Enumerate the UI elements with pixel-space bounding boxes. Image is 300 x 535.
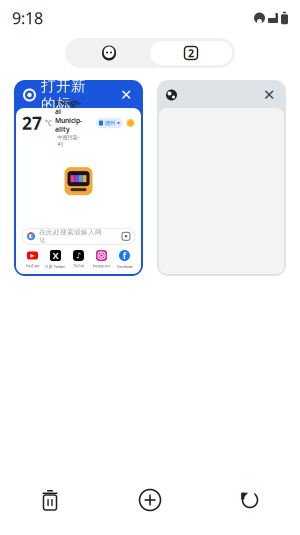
staticText: 27: [22, 111, 42, 134]
button[interactable]: New tab: [122, 478, 178, 522]
staticText: ✕: [120, 87, 132, 103]
button[interactable]: Close tab: [261, 87, 277, 103]
button[interactable]: ✕: [157, 80, 286, 276]
staticText: 中度污染 · 41: [57, 134, 79, 148]
staticText: ▾: [117, 120, 120, 126]
staticText: TikTok: [73, 263, 84, 268]
staticText: ▶: [30, 252, 34, 259]
staticText: 在此处搜索或输入网址: [39, 228, 102, 244]
staticText: °C: [45, 119, 52, 127]
staticText: 德州: [105, 120, 115, 126]
staticText: 2: [188, 46, 194, 60]
staticText: Facebook: [116, 264, 132, 269]
button[interactable]: ▶: [21, 250, 44, 268]
staticText: X 原 Twitter: [45, 264, 65, 269]
staticText: ✕: [263, 87, 275, 103]
staticText: ♪: [76, 251, 81, 260]
button[interactable]: X: [44, 249, 67, 269]
button[interactable]: Close all tabs: [22, 478, 78, 522]
button[interactable]: Instagram: [90, 250, 113, 268]
button[interactable]: ♪: [67, 250, 90, 268]
staticText: ◤: [241, 490, 248, 501]
button[interactable]: Incognito tabs: [68, 41, 150, 65]
staticText: Shanghai Municipality: [55, 98, 82, 134]
button[interactable]: f: [113, 249, 136, 269]
staticText: Instagram: [92, 263, 110, 268]
staticText: f: [122, 249, 126, 262]
staticText: YouTube: [25, 263, 39, 268]
button[interactable]: 打开新的标: [14, 80, 143, 276]
button[interactable]: Open tabs, 2: [150, 41, 232, 65]
button[interactable]: 在此处搜索或输入网址: [22, 228, 135, 244]
button[interactable]: Back: [222, 478, 278, 522]
button[interactable]: Close tab: [118, 87, 134, 103]
staticText: 打开新的标: [41, 77, 86, 113]
staticText: 9:18: [12, 7, 43, 29]
staticText: X: [52, 249, 58, 262]
